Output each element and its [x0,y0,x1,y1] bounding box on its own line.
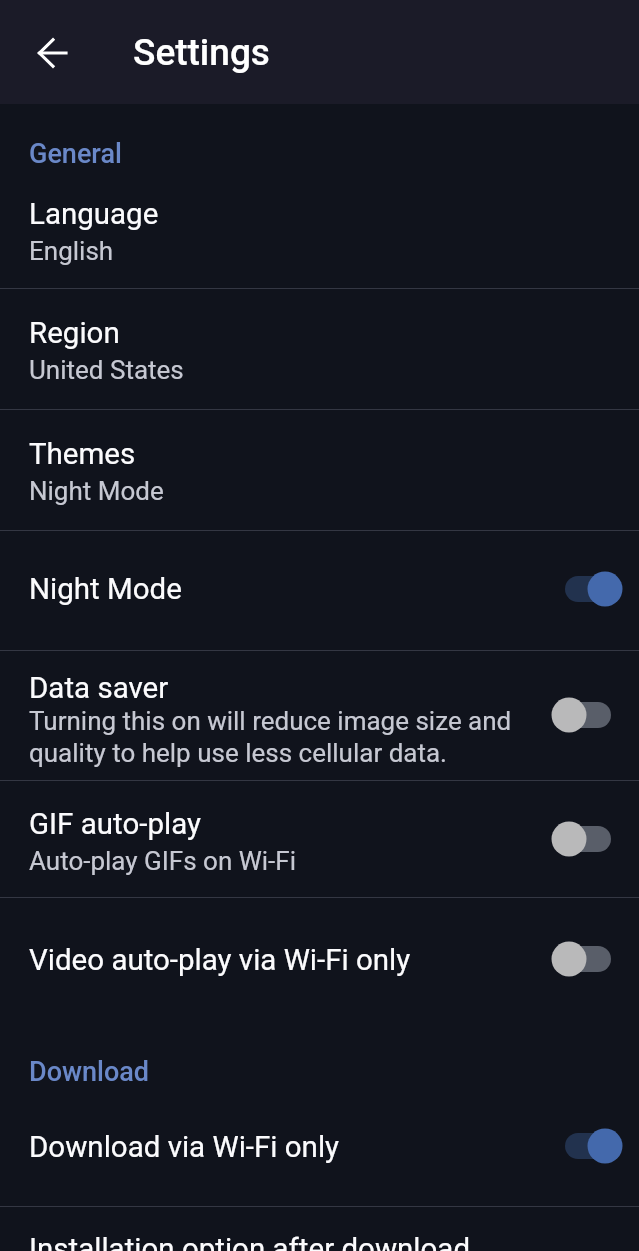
staticText: Installation option after download [29,1232,471,1251]
staticText: Night Mode [29,572,182,607]
staticText: Night Mode [29,476,164,506]
button[interactable]: Download via Wi-Fi only switch [552,1126,624,1166]
button[interactable]: Video auto-play via Wi-Fi only [0,898,639,1013]
staticText: Region [29,316,120,351]
staticText: Video auto-play via Wi-Fi only [29,943,411,978]
staticText: English [29,236,114,266]
staticText: Turning this on will reduce image size a… [29,706,512,768]
button[interactable]: GIF auto-play switch [552,819,624,859]
staticText: Download via Wi-Fi only [29,1130,340,1165]
button[interactable]: Installation option after download [0,1207,639,1251]
button[interactable]: Data saver [0,651,639,780]
button[interactable]: Language [0,194,639,288]
button[interactable]: Night Mode switch [552,569,624,609]
button[interactable]: GIF auto-play [0,781,639,897]
staticText: GIF auto-play [29,807,201,842]
staticText: Settings [133,31,270,74]
button[interactable]: Themes [0,410,639,530]
button[interactable]: Night Mode [0,531,639,650]
staticText: Download [29,1056,149,1088]
button[interactable]: Download via Wi-Fi only [0,1108,639,1206]
staticText: Language [29,197,159,232]
button[interactable]: Region [0,289,639,409]
button[interactable]: Video auto-play via Wi-Fi only switch [552,939,624,979]
button[interactable]: Data saver switch [552,695,624,735]
staticText: General [29,138,122,170]
staticText: Auto-play GIFs on Wi-Fi [29,846,296,876]
button[interactable]: Back [24,23,82,81]
staticText: Data saver [29,671,169,706]
staticText: United States [29,355,184,385]
staticText: Themes [29,437,136,472]
